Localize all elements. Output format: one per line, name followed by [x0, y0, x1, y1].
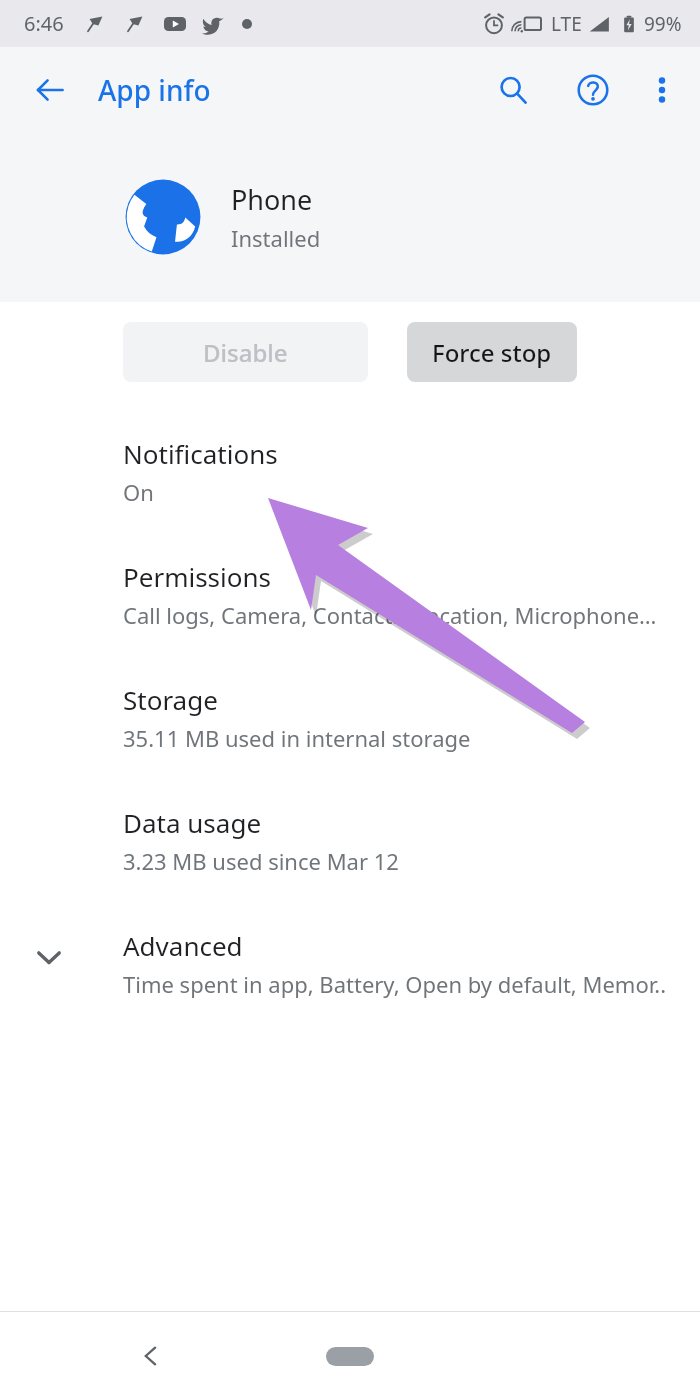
button[interactable]: Phone	[0, 132, 700, 302]
button[interactable]: Force stop	[407, 322, 577, 382]
button[interactable]: Notifications	[0, 420, 700, 543]
staticText: App info	[98, 71, 211, 109]
button[interactable]: Permissions	[0, 543, 700, 666]
staticText: 3.23 MB used since Mar 12	[123, 846, 399, 876]
button[interactable]: Advanced	[0, 912, 700, 1035]
staticText: Disable	[203, 336, 288, 369]
button[interactable]: More options	[638, 66, 686, 114]
button[interactable]: Help	[566, 63, 620, 117]
staticText: Permissions	[123, 559, 272, 594]
staticText: Notifications	[123, 436, 278, 471]
button[interactable]: Storage	[0, 666, 700, 789]
button[interactable]: Back	[122, 1326, 182, 1386]
staticText: Advanced	[123, 928, 243, 963]
button[interactable]: Data usage	[0, 789, 700, 912]
staticText: Data usage	[123, 805, 262, 840]
staticText: Phone	[231, 181, 313, 218]
staticText: 6:46	[24, 10, 64, 37]
staticText: On	[123, 477, 154, 507]
staticText: Call logs, Camera, Contacts, Location, M…	[123, 600, 657, 630]
button[interactable]: Back	[24, 64, 76, 116]
staticText: Installed	[231, 223, 321, 253]
staticText: Force stop	[432, 336, 552, 369]
staticText: 35.11 MB used in internal storage	[123, 723, 471, 753]
staticText: Time spent in app, Battery, Open by defa…	[123, 969, 667, 999]
button[interactable]: Search	[486, 63, 540, 117]
staticText: LTE	[551, 11, 582, 37]
button[interactable]: Home	[305, 1336, 395, 1376]
staticText: 99%	[644, 11, 682, 37]
staticText: Storage	[123, 682, 218, 717]
button[interactable]: Disable	[123, 322, 368, 382]
